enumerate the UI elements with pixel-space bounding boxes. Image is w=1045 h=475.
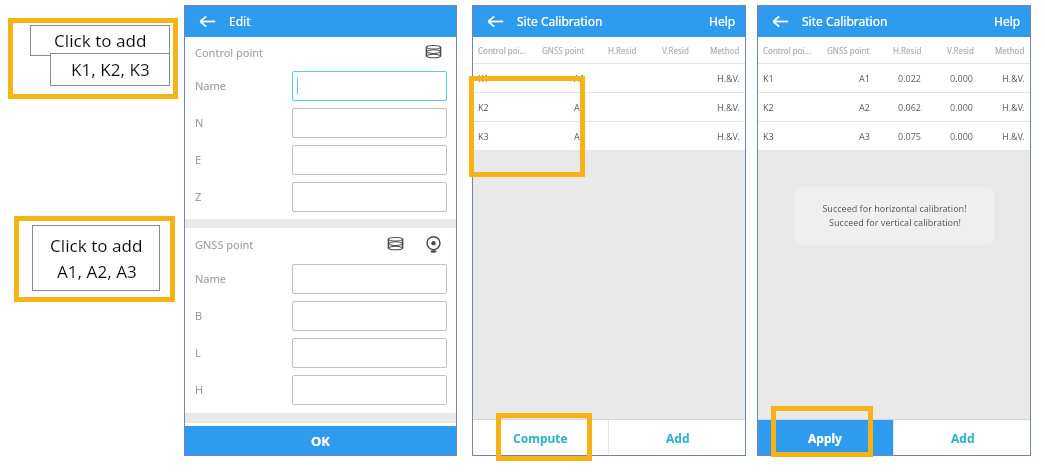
staticText: E [195, 152, 202, 167]
staticText: Name [195, 78, 227, 93]
staticText: 0.062 [898, 101, 922, 113]
button[interactable] [292, 264, 447, 294]
staticText: 0.000 [950, 101, 974, 113]
button[interactable] [292, 71, 447, 101]
button[interactable]: Back [196, 10, 218, 32]
button[interactable]: Back [769, 10, 791, 32]
staticText: Site Calibration [517, 13, 603, 29]
staticText: Click to add [50, 234, 143, 257]
button[interactable]: Apply [757, 420, 893, 456]
staticText: Z [195, 189, 202, 204]
staticText: H.&V. [717, 130, 740, 142]
button[interactable]: Select control point from library [421, 40, 445, 64]
staticText: K2 [478, 101, 489, 113]
other: Back [772, 13, 789, 30]
staticText: 0.075 [898, 130, 922, 142]
staticText: K3 [763, 130, 774, 142]
staticText: K1 [478, 72, 489, 84]
staticText: Control point [195, 45, 264, 60]
staticText: N [195, 115, 204, 130]
button[interactable] [292, 182, 447, 212]
staticText: H.&V. [717, 72, 740, 84]
button[interactable]: Add [894, 420, 1031, 456]
other: Select GNSS point from library [387, 236, 404, 253]
button[interactable]: OK [184, 426, 457, 456]
button[interactable] [292, 108, 447, 138]
staticText: A1 [574, 72, 585, 84]
staticText: Compute [513, 430, 568, 446]
staticText: H.&V. [1002, 101, 1025, 113]
button[interactable]: Help [994, 5, 1021, 37]
button[interactable]: K1 [472, 64, 746, 92]
staticText: Site Calibration [802, 13, 888, 29]
other: Select control point from library [425, 44, 442, 61]
staticText: H.Resid [608, 45, 637, 56]
staticText: GNSS point [195, 237, 254, 252]
button[interactable]: Compute [472, 420, 608, 456]
button[interactable]: Select GNSS point from library [383, 232, 407, 256]
staticText: V.Resid [662, 45, 689, 56]
button[interactable]: K2 [757, 93, 1031, 121]
other: Back [487, 13, 504, 30]
staticText: V.Resid [947, 45, 974, 56]
staticText: 0.000 [950, 72, 974, 84]
staticText: Succeed for vertical calibration! [829, 216, 961, 228]
staticText: Name [195, 271, 227, 286]
staticText: Help [994, 13, 1021, 29]
staticText: Edit [229, 13, 251, 29]
staticText: Add [951, 430, 975, 446]
staticText: A3 [574, 130, 585, 142]
staticText: A2 [574, 101, 585, 113]
staticText: A3 [859, 130, 870, 142]
staticText: Click to add [54, 29, 147, 52]
button[interactable] [292, 301, 447, 331]
staticText: OK [311, 432, 330, 450]
staticText: Succeed for horizontal calibration! [822, 202, 967, 214]
button[interactable]: K1 [757, 64, 1031, 92]
staticText: H.&V. [717, 101, 740, 113]
button[interactable]: Help [709, 5, 736, 37]
staticText: Method [710, 45, 740, 56]
button[interactable]: K3 [472, 122, 746, 150]
staticText: K1, K2, K3 [71, 58, 150, 81]
staticText: H [195, 382, 204, 397]
staticText: L [195, 345, 201, 360]
staticText: 0.000 [950, 130, 974, 142]
staticText: Control poi... [478, 45, 527, 56]
staticText: Help [709, 13, 736, 29]
staticText: Control poi... [763, 45, 812, 56]
button[interactable] [292, 145, 447, 175]
button[interactable]: Back [484, 10, 506, 32]
button[interactable]: Pick on map [421, 232, 445, 256]
staticText: H.&V. [1002, 72, 1025, 84]
staticText: Method [995, 45, 1025, 56]
button[interactable]: Add [609, 420, 746, 456]
staticText: A1, A2, A3 [57, 260, 137, 283]
staticText: K3 [478, 130, 489, 142]
other: Back [199, 13, 216, 30]
button[interactable] [292, 375, 447, 405]
staticText: A2 [859, 101, 870, 113]
staticText: H.Resid [893, 45, 922, 56]
staticText: Add [666, 430, 690, 446]
staticText: GNSS point [542, 45, 585, 56]
button[interactable]: K2 [472, 93, 746, 121]
staticText: H.&V. [1002, 130, 1025, 142]
button[interactable] [292, 338, 447, 368]
staticText: A1 [859, 72, 870, 84]
staticText: Apply [808, 430, 842, 446]
staticText: K2 [763, 101, 774, 113]
staticText: GNSS point [827, 45, 870, 56]
staticText: B [195, 308, 203, 323]
button[interactable]: K3 [757, 122, 1031, 150]
other: Pick on map [425, 236, 442, 253]
staticText: 0.022 [898, 72, 922, 84]
staticText: K1 [763, 72, 774, 84]
